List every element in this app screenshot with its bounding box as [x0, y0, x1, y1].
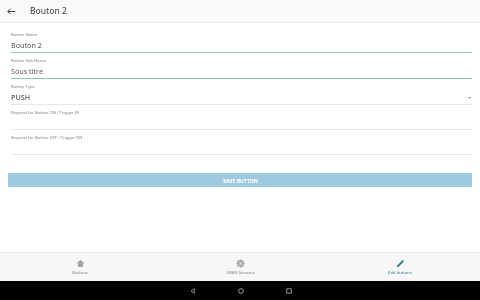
staticText: Button Name: [11, 32, 38, 38]
button[interactable]: Recent apps: [279, 281, 298, 300]
button[interactable]: Button Name: [0, 32, 480, 58]
button[interactable]: Buttons: [0, 253, 160, 281]
staticText: Edit buttons: [388, 270, 412, 276]
staticText: Button Type: [11, 84, 35, 90]
button[interactable]: Button Type: [0, 84, 480, 110]
button[interactable]: VBAN Streams: [160, 253, 320, 281]
staticText: Bouton 2: [11, 40, 42, 50]
staticText: Request for Button ON / Trigger IN: [11, 110, 80, 116]
staticText: Request for Button OFF / Trigger ON: [11, 135, 83, 141]
staticText: VBAN Streams: [226, 270, 255, 276]
button[interactable]: Request for Button OFF / Trigger ON: [0, 135, 480, 160]
button[interactable]: SAVE BUTTON: [8, 173, 472, 187]
staticText: Bouton 2: [30, 5, 67, 17]
staticText: PUSH: [11, 92, 31, 102]
staticText: Button Sub Name: [11, 58, 46, 64]
staticText: SAVE BUTTON: [223, 177, 258, 184]
button[interactable]: Home: [231, 281, 250, 300]
button[interactable]: Request for Button ON / Trigger IN: [0, 110, 480, 135]
button[interactable]: Button Sub Name: [0, 58, 480, 84]
staticText: Buttons: [72, 270, 88, 276]
button[interactable]: Back: [183, 281, 202, 300]
button[interactable]: Back: [0, 0, 22, 22]
button[interactable]: Edit buttons: [320, 253, 480, 281]
staticText: Sous titre: [11, 66, 43, 76]
